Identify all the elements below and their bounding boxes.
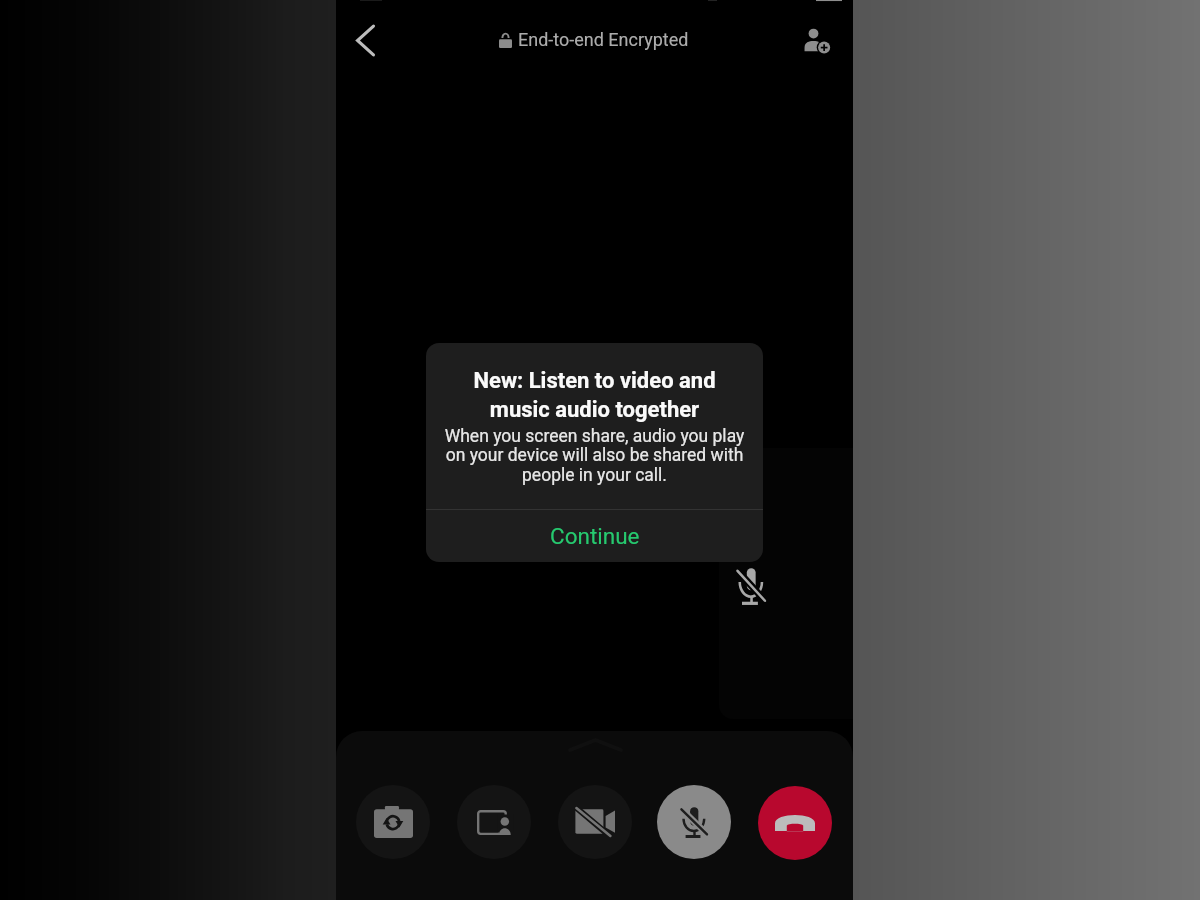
button[interactable]: Add participant bbox=[795, 19, 839, 63]
button[interactable]: Share screen bbox=[457, 785, 531, 859]
button[interactable]: End call bbox=[758, 786, 832, 860]
button[interactable]: Back bbox=[341, 16, 389, 64]
button[interactable]: Switch camera bbox=[356, 785, 430, 859]
button[interactable]: Turn camera on bbox=[558, 785, 632, 859]
button[interactable]: Continue bbox=[426, 510, 763, 562]
staticText: When you screen share, audio you play on… bbox=[444, 426, 745, 486]
button[interactable]: Unmute microphone bbox=[657, 785, 731, 859]
staticText: Continue bbox=[550, 523, 640, 549]
staticText: New: Listen to video and music audio tog… bbox=[444, 368, 745, 422]
staticText: End-to-end Encrypted bbox=[518, 29, 689, 50]
